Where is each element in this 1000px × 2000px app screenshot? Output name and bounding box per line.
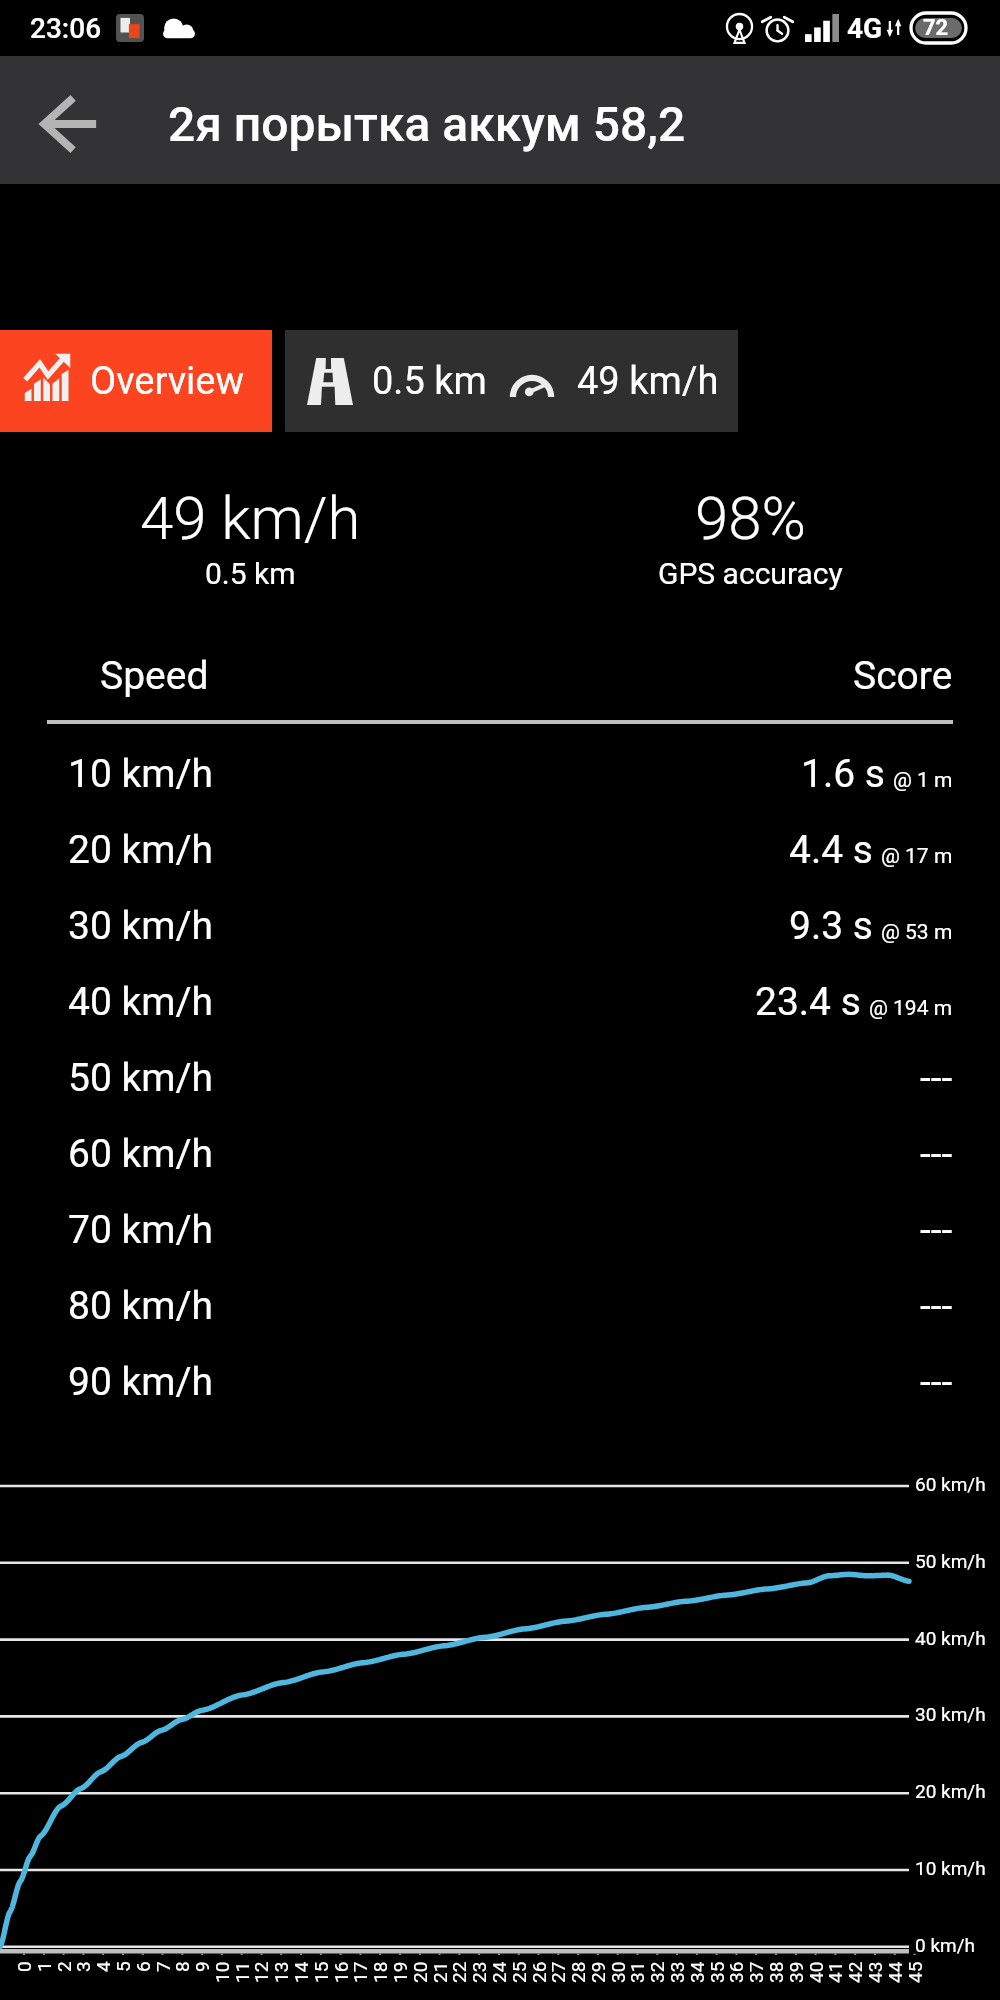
staticText: Score [853,653,953,699]
staticText: 30 [607,1961,629,1983]
staticText: 70 km/h [68,1207,214,1253]
staticText: 1.6 s [801,751,885,797]
staticText: 16 [330,1961,352,1983]
staticText: 9.3 s [789,903,873,949]
button[interactable]: 50 km/h [68,1040,953,1116]
staticText: 49 km/h [577,359,719,404]
staticText: 20 [409,1961,431,1983]
staticText: 2 [53,1961,75,1972]
staticText: 4.4 s [789,827,873,873]
staticText: 60 km/h [915,1473,986,1495]
staticText: 0.5 km [205,556,296,591]
staticText: 6 [132,1961,154,1972]
staticText: --- [920,1131,953,1177]
staticText: 18 [369,1961,391,1983]
button[interactable]: 70 km/h [68,1192,953,1268]
button[interactable]: 20 km/h [68,812,953,888]
staticText: 22 [448,1961,470,1983]
staticText: 38 [765,1961,787,1983]
staticText: 50 km/h [68,1055,214,1101]
staticText: 7 [152,1961,174,1972]
staticText: 40 [805,1961,827,1983]
staticText: 80 km/h [68,1283,214,1329]
staticText: 23 [468,1961,490,1983]
button[interactable]: 0.5 km [285,330,738,432]
staticText: @ 17 m [881,844,953,869]
button[interactable]: 30 km/h [68,888,953,964]
staticText: 11 [231,1961,253,1983]
staticText: 24 [488,1961,510,1983]
staticText: 50 km/h [915,1550,986,1572]
staticText: --- [920,1207,953,1253]
staticText: 34 [686,1961,708,1983]
staticText: 90 km/h [68,1359,214,1405]
staticText: 31 [626,1961,648,1983]
staticText: 9 [191,1961,213,1972]
staticText: 27 [547,1961,569,1983]
staticText: @ 194 m [869,996,953,1021]
staticText: 3 [72,1961,94,1972]
button[interactable]: 90 km/h [68,1344,953,1420]
staticText: 30 km/h [915,1703,986,1725]
staticText: 19 [389,1961,411,1983]
staticText: @ 1 m [893,768,953,793]
staticText: 0.5 km [372,359,487,404]
staticText: 39 [785,1961,807,1983]
staticText: 42 [844,1961,866,1983]
button[interactable]: Overview [0,330,272,432]
staticText: @ 53 m [881,920,953,945]
button[interactable]: Back [0,56,134,184]
staticText: 23.4 s [755,979,861,1025]
staticText: 20 km/h [68,827,214,873]
staticText: 17 [349,1961,371,1983]
staticText: Overview [90,359,245,404]
staticText: 30 km/h [68,903,214,949]
staticText: 98% [695,483,806,553]
staticText: 37 [745,1961,767,1983]
staticText: 49 km/h [140,483,361,553]
staticText: 25 [508,1961,530,1983]
staticText: 4G [847,12,883,45]
staticText: --- [920,1283,953,1329]
staticText: 20 km/h [915,1780,986,1802]
button[interactable]: 60 km/h [68,1116,953,1192]
staticText: 28 [567,1961,589,1983]
staticText: 36 [725,1961,747,1983]
staticText: 15 [310,1961,332,1983]
staticText: 23:06 [30,12,102,45]
staticText: GPS accuracy [658,556,843,591]
staticText: 12 [250,1961,272,1983]
staticText: 72 [923,15,949,41]
staticText: 35 [706,1961,728,1983]
staticText: 40 km/h [915,1627,986,1649]
staticText: 10 [211,1961,233,1983]
staticText: 13 [270,1961,292,1983]
staticText: 0 [13,1961,35,1972]
staticText: 43 [864,1961,886,1983]
staticText: 8 [171,1961,193,1972]
staticText: --- [920,1055,953,1101]
staticText: 10 km/h [68,751,214,797]
staticText: 32 [646,1961,668,1983]
staticText: 14 [290,1961,312,1983]
staticText: 44 [884,1961,906,1983]
staticText: 60 km/h [68,1131,214,1177]
staticText: --- [920,1359,953,1405]
staticText: 26 [528,1961,550,1983]
staticText: 5 [112,1961,134,1972]
staticText: 4 [92,1961,114,1972]
staticText: 41 [824,1961,846,1983]
staticText: 29 [587,1961,609,1983]
button[interactable]: 40 km/h [68,964,953,1040]
button[interactable]: 80 km/h [68,1268,953,1344]
staticText: Speed [100,653,209,699]
staticText: 1 [33,1961,55,1972]
button[interactable]: 10 km/h [68,736,953,812]
staticText: 40 km/h [68,979,214,1025]
staticText: 0 km/h [915,1934,975,1956]
staticText: 21 [429,1961,451,1983]
staticText: 33 [666,1961,688,1983]
staticText: 10 km/h [915,1857,986,1879]
staticText: 2я порытка аккум 58,2 [168,96,686,152]
staticText: 45 [904,1961,926,1983]
